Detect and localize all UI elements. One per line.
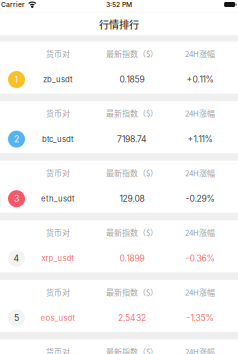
- staticText: 最新指数（$）: [106, 107, 158, 119]
- button[interactable]: 货币对: [0, 41, 238, 93]
- staticText: 129.08: [119, 193, 144, 204]
- staticText: 0.1859: [119, 74, 144, 85]
- button[interactable]: 货币对: [0, 161, 238, 213]
- staticText: 7198.74: [117, 134, 147, 144]
- staticText: eos_usdt: [40, 313, 75, 323]
- staticText: 3:52 PM: [106, 0, 132, 9]
- staticText: xrp_usdt: [41, 254, 74, 263]
- staticText: 最新指数（$）: [106, 346, 158, 354]
- button[interactable]: 货币对: [0, 280, 238, 332]
- staticText: 5: [14, 313, 19, 323]
- staticText: 最新指数（$）: [106, 226, 158, 238]
- staticText: zb_usdt: [43, 75, 73, 84]
- staticText: 2.5432: [118, 313, 146, 323]
- staticText: 货币对: [46, 286, 70, 298]
- staticText: 24H涨幅: [185, 48, 215, 59]
- staticText: -1.35%: [186, 313, 213, 323]
- staticText: btc_usdt: [42, 134, 74, 144]
- staticText: 24H涨幅: [185, 107, 215, 119]
- staticText: 3: [14, 193, 19, 204]
- staticText: +1.11%: [187, 134, 212, 144]
- button[interactable]: 货币对: [0, 101, 238, 153]
- staticText: 最新指数（$）: [106, 48, 158, 59]
- staticText: 货币对: [46, 107, 70, 119]
- staticText: 货币对: [46, 346, 70, 354]
- button[interactable]: 货币对: [0, 339, 238, 354]
- staticText: 货币对: [46, 226, 70, 238]
- staticText: 货币对: [46, 167, 70, 178]
- staticText: 4: [13, 253, 19, 264]
- staticText: 24H涨幅: [185, 167, 215, 178]
- staticText: eth_usdt: [41, 194, 75, 203]
- staticText: 24H涨幅: [185, 346, 215, 354]
- staticText: -0.29%: [185, 193, 214, 204]
- staticText: 行情排行: [99, 17, 139, 31]
- staticText: 最新指数（$）: [106, 167, 158, 178]
- staticText: 0.1899: [119, 253, 144, 263]
- staticText: 24H涨幅: [185, 286, 215, 298]
- staticText: 最新指数（$）: [106, 286, 158, 298]
- staticText: -0.36%: [185, 253, 214, 263]
- staticText: 24H涨幅: [185, 226, 215, 238]
- button[interactable]: 货币对: [0, 220, 238, 272]
- staticText: 2: [14, 134, 19, 144]
- staticText: 货币对: [46, 48, 70, 59]
- staticText: 1: [14, 74, 18, 85]
- staticText: Carrier: [1, 0, 25, 9]
- staticText: +0.11%: [186, 74, 213, 85]
